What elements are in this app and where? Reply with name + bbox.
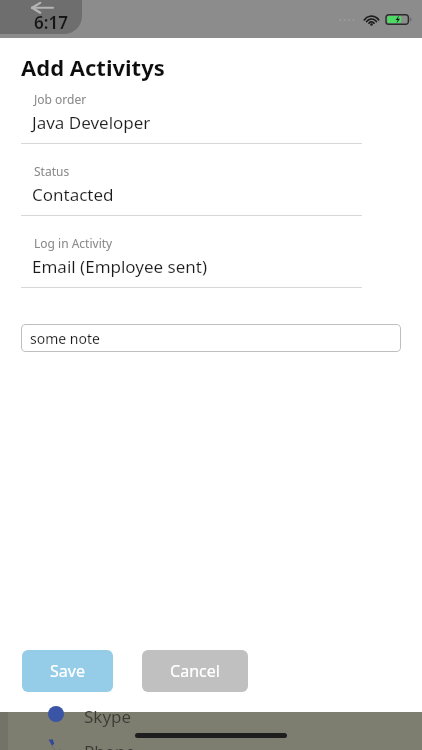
staticText: Cancel <box>170 660 220 682</box>
button[interactable]: Status <box>0 163 422 216</box>
button[interactable]: Log in Activity <box>0 235 422 288</box>
staticText: Phone <box>84 740 136 750</box>
other: Back <box>31 1 53 14</box>
button[interactable]: Cancel <box>142 650 248 692</box>
staticText: Save <box>50 660 85 682</box>
button[interactable]: Save <box>22 650 113 692</box>
staticText: Email (Employee sent) <box>32 255 208 278</box>
staticText: Log in Activity <box>34 235 113 251</box>
staticText: Skype <box>84 705 132 728</box>
staticText: Job order <box>34 91 87 107</box>
staticText: Status <box>34 163 70 179</box>
button[interactable]: some note <box>21 324 401 352</box>
staticText: Java Developer <box>32 111 151 134</box>
staticText: 6:17 <box>34 11 68 34</box>
staticText: Add Activitys <box>21 52 165 82</box>
button[interactable]: Job order <box>0 91 422 144</box>
staticText: some note <box>30 329 100 348</box>
staticText: Contacted <box>32 183 114 206</box>
